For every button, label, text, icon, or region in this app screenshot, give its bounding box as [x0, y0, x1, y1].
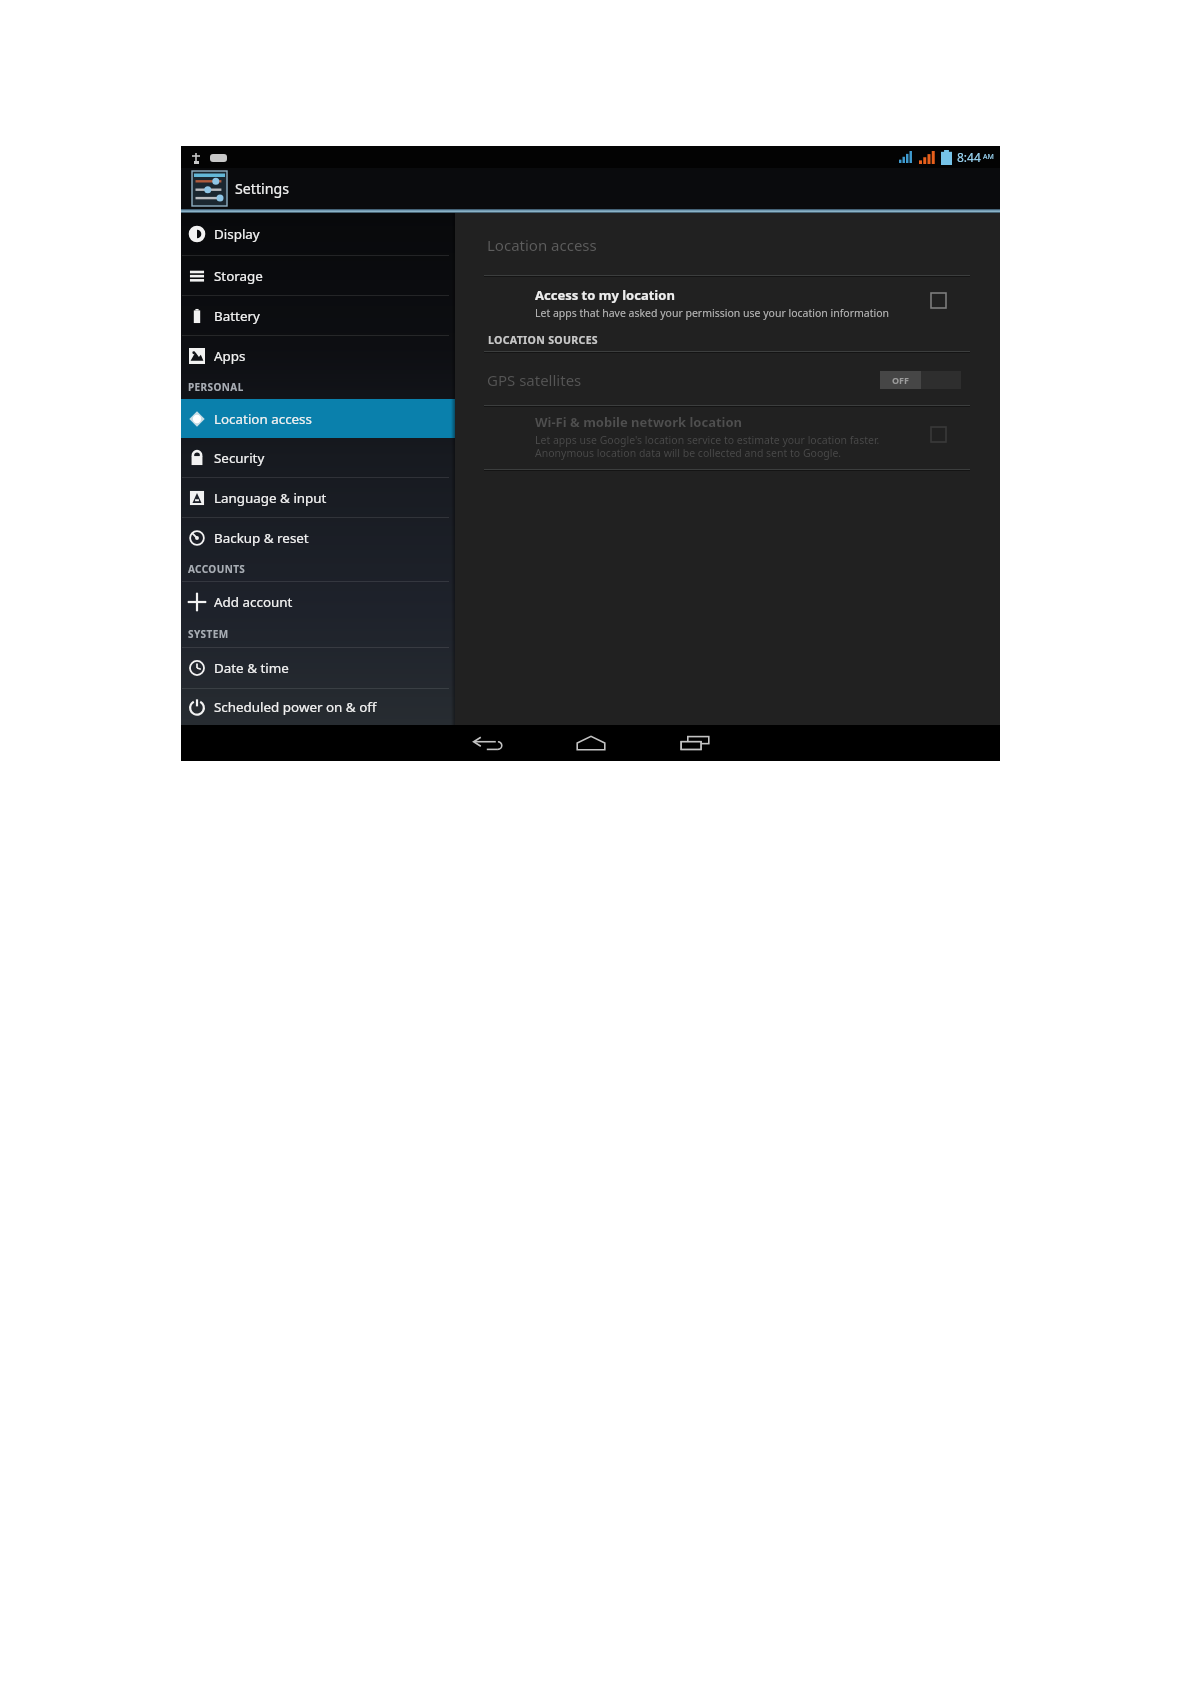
- button[interactable]: Display: [181, 213, 455, 255]
- staticText: Storage: [214, 267, 263, 285]
- button[interactable]: Date & time: [181, 648, 455, 688]
- staticText: Location access: [214, 410, 312, 428]
- staticText: 8:44: [957, 149, 981, 165]
- staticText: GPS satellites: [487, 370, 582, 390]
- staticText: LOCATION SOURCES: [488, 333, 599, 347]
- button[interactable]: Backup & reset: [181, 518, 455, 557]
- staticText: Access to my location: [535, 286, 675, 304]
- button[interactable]: Access to my location: [455, 276, 1000, 339]
- staticText: Language & input: [214, 489, 327, 507]
- button[interactable]: Wi-Fi & mobile network location: [455, 406, 1000, 470]
- button[interactable]: Access to my location checkbox: [925, 287, 952, 314]
- staticText: Date & time: [214, 659, 289, 677]
- staticText: ACCOUNTS: [188, 562, 246, 576]
- button[interactable]: Wi-Fi & mobile network location checkbox: [925, 421, 952, 448]
- staticText: PERSONAL: [188, 380, 244, 394]
- button[interactable]: GPS satellites switch, off: [880, 371, 961, 389]
- button[interactable]: Home: [565, 725, 617, 761]
- staticText: OFF: [892, 374, 910, 386]
- staticText: Let apps use Google's location service t…: [535, 433, 880, 447]
- button[interactable]: Storage: [181, 256, 455, 295]
- staticText: Battery: [214, 307, 260, 325]
- staticText: Backup & reset: [214, 529, 309, 547]
- button[interactable]: Battery: [181, 296, 455, 335]
- button[interactable]: Add account: [181, 582, 455, 621]
- staticText: Wi-Fi & mobile network location: [535, 413, 743, 431]
- staticText: Display: [214, 225, 260, 243]
- staticText: Add account: [214, 593, 293, 611]
- staticText: Apps: [214, 347, 246, 365]
- button[interactable]: Recent apps: [669, 725, 721, 761]
- button[interactable]: Location access: [181, 399, 455, 438]
- staticText: AM: [983, 152, 994, 162]
- staticText: Location access: [487, 235, 597, 255]
- staticText: Settings: [235, 179, 289, 198]
- button[interactable]: Back: [462, 725, 514, 761]
- staticText: Security: [214, 449, 265, 467]
- button[interactable]: Security: [181, 438, 455, 477]
- button[interactable]: Apps: [181, 336, 455, 375]
- button[interactable]: Language & input: [181, 478, 455, 517]
- button[interactable]: Settings: [192, 171, 289, 206]
- staticText: Anonymous location data will be collecte…: [535, 446, 842, 460]
- staticText: Let apps that have asked your permission…: [535, 306, 890, 320]
- staticText: Scheduled power on & off: [214, 698, 377, 716]
- staticText: SYSTEM: [188, 627, 229, 641]
- button[interactable]: Scheduled power on & off: [181, 689, 455, 725]
- button[interactable]: GPS satellites: [455, 352, 1000, 405]
